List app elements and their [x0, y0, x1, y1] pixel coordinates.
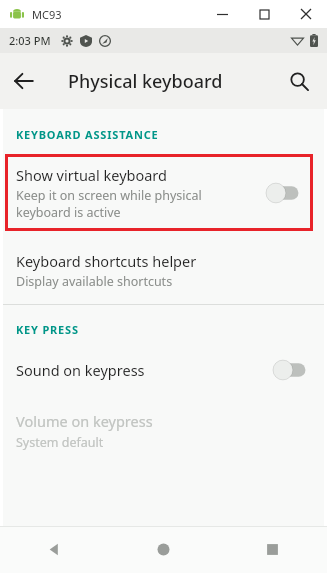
staticText: MC93	[32, 7, 62, 22]
staticText: KEY PRESS	[16, 322, 79, 337]
button[interactable]: Close	[285, 0, 327, 28]
button[interactable]: Recent apps	[218, 526, 327, 573]
button[interactable]: Keyboard shortcuts helper	[3, 245, 324, 304]
button[interactable]	[272, 359, 310, 381]
button[interactable]: Home	[109, 526, 218, 573]
staticText: Physical keyboard	[68, 69, 223, 94]
button[interactable]: Sound on keypress	[3, 355, 324, 385]
button[interactable]: Search	[275, 57, 323, 105]
staticText: Keyboard shortcuts helper	[16, 251, 197, 271]
staticText: 2:03 PM	[9, 33, 51, 48]
button[interactable]: Show virtual keyboard	[5, 154, 313, 231]
staticText: System default	[16, 434, 104, 451]
staticText: Keep it on screen while physical keyboar…	[16, 187, 202, 220]
staticText: Volume on keypress	[16, 411, 153, 431]
button[interactable]: Minimize	[201, 0, 243, 28]
button[interactable]	[265, 182, 303, 204]
button[interactable]: Back	[0, 526, 109, 573]
button[interactable]: Back	[0, 57, 48, 105]
staticText: Show virtual keyboard	[16, 165, 167, 185]
staticText: Display available shortcuts	[16, 273, 173, 290]
button[interactable]: Maximize	[243, 0, 285, 28]
staticText: Sound on keypress	[16, 360, 272, 380]
staticText: KEYBOARD ASSISTANCE	[16, 127, 159, 142]
